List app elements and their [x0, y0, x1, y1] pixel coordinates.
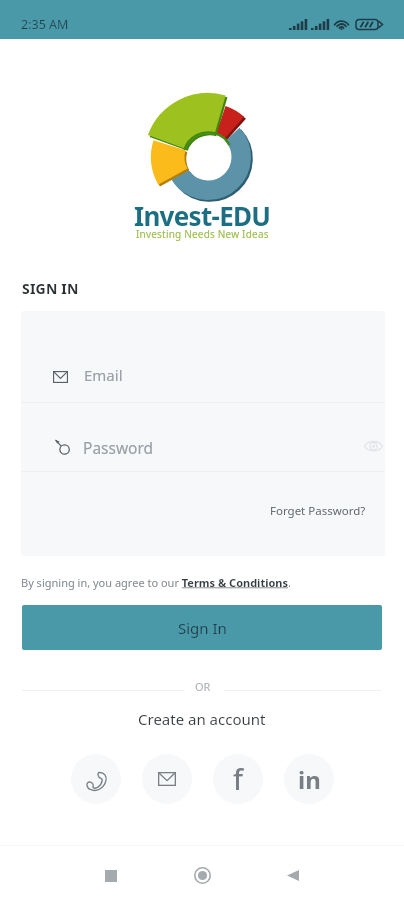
button[interactable]: Email	[142, 754, 192, 804]
staticText: OR	[195, 679, 211, 694]
staticText: Password	[83, 437, 154, 458]
button[interactable]: LinkedIn	[284, 754, 334, 804]
staticText: Create an account	[138, 709, 266, 729]
staticText: Invest-EDU	[134, 198, 271, 233]
button[interactable]: Back	[269, 852, 316, 899]
button[interactable]: Password	[21, 403, 385, 471]
button[interactable]: Home	[179, 852, 226, 899]
button[interactable]: Facebook	[213, 754, 263, 804]
staticText: 2:35 AM	[21, 16, 69, 33]
staticText: SIGN IN	[22, 279, 79, 298]
button[interactable]: Forget Password?	[270, 503, 385, 519]
button[interactable]: By signing in, you agree to our Terms & …	[21, 575, 291, 590]
staticText: Sign In	[178, 618, 227, 638]
staticText: Email	[84, 365, 123, 385]
button[interactable]: Phone	[71, 754, 121, 804]
button[interactable]: Recent apps	[87, 852, 134, 899]
button[interactable]: Email	[21, 311, 385, 402]
button[interactable]: Sign In	[22, 605, 382, 650]
button[interactable]: Create an account	[0, 706, 404, 732]
staticText: in	[298, 763, 321, 796]
staticText: f	[233, 760, 243, 798]
staticText: Investing Needs New Ideas	[136, 227, 269, 241]
button[interactable]: Show password	[361, 437, 385, 455]
